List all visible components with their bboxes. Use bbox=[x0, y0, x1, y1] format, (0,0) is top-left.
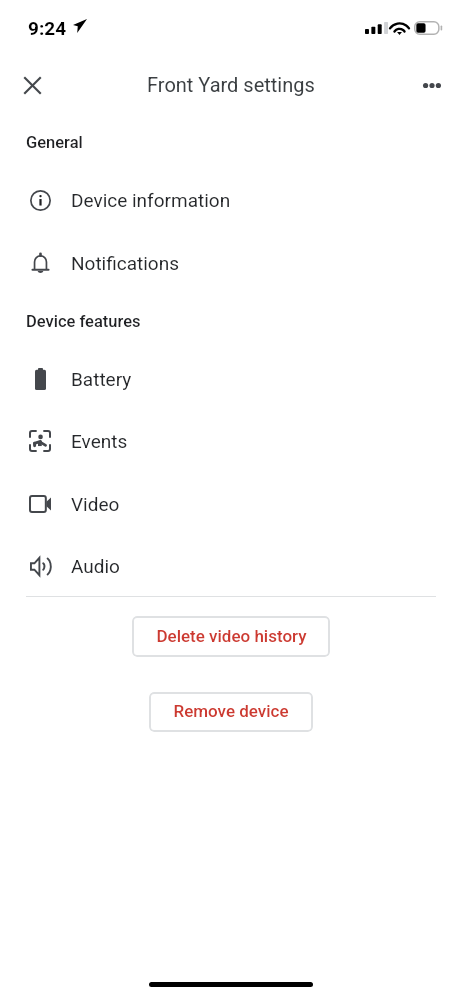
button[interactable]: Remove device bbox=[149, 692, 313, 732]
button[interactable]: Video bbox=[0, 473, 462, 535]
staticText: Delete video history bbox=[156, 626, 307, 646]
staticText: Device features bbox=[26, 312, 141, 331]
button[interactable]: Events bbox=[0, 410, 462, 472]
staticText: Video bbox=[71, 493, 120, 515]
staticText: General bbox=[26, 133, 83, 152]
button[interactable]: Close bbox=[9, 62, 55, 108]
button[interactable]: Delete video history bbox=[132, 616, 330, 657]
staticText: Battery bbox=[71, 368, 132, 390]
staticText: Notifications bbox=[71, 252, 180, 274]
staticText: Front Yard settings bbox=[147, 73, 315, 96]
staticText: Device information bbox=[71, 189, 231, 211]
staticText: Audio bbox=[71, 555, 120, 577]
staticText: Events bbox=[71, 430, 128, 452]
button[interactable]: Notifications bbox=[0, 232, 462, 294]
button[interactable]: More options bbox=[409, 62, 455, 108]
staticText: Remove device bbox=[173, 701, 289, 721]
staticText: 9:24 bbox=[28, 17, 67, 39]
button[interactable]: Audio bbox=[0, 535, 462, 597]
button[interactable]: Battery bbox=[0, 348, 462, 410]
button[interactable]: Device information bbox=[0, 169, 462, 231]
